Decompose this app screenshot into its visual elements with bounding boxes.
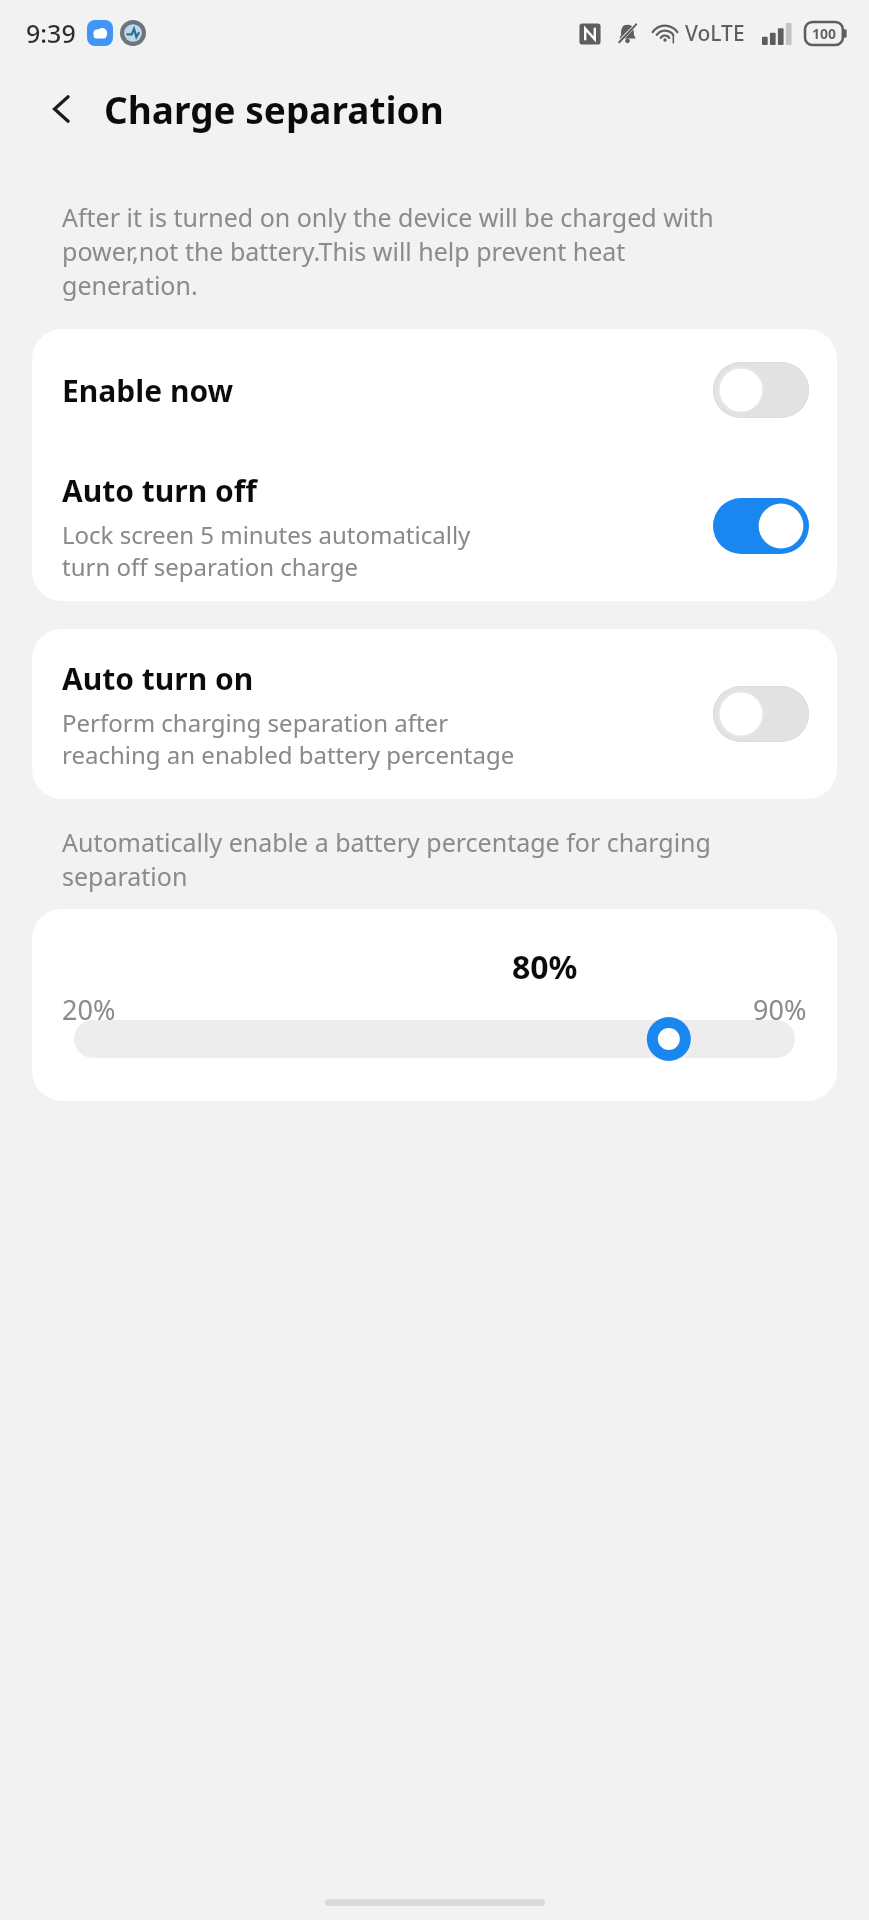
- button[interactable]: Toggle on: [713, 498, 809, 554]
- button[interactable]: Toggle off: [713, 362, 809, 418]
- button[interactable]: Toggle off: [713, 686, 809, 742]
- staticText: 20%: [62, 991, 116, 1028]
- button[interactable]: Enable now: [32, 329, 837, 451]
- staticText: Automatically enable a battery percentag…: [62, 825, 711, 893]
- staticText: 9:39: [26, 16, 76, 50]
- button[interactable]: Auto turn on: [32, 629, 837, 799]
- staticText: Lock screen 5 minutes automatically turn…: [62, 518, 471, 583]
- button[interactable]: Auto turn off: [32, 451, 837, 601]
- staticText: Charge separation: [104, 84, 444, 134]
- staticText: VoLTE: [685, 19, 745, 48]
- staticText: Enable now: [62, 370, 713, 411]
- staticText: 80%: [512, 945, 578, 989]
- staticText: 100: [812, 24, 837, 43]
- staticText: Perform charging separation after reachi…: [62, 706, 515, 771]
- staticText: Auto turn off: [62, 470, 257, 511]
- button[interactable]: Battery percentage slider: [74, 1017, 795, 1061]
- button[interactable]: Back: [30, 77, 94, 141]
- staticText: 90%: [753, 991, 807, 1028]
- staticText: After it is turned on only the device wi…: [62, 200, 714, 302]
- staticText: Auto turn on: [62, 658, 254, 699]
